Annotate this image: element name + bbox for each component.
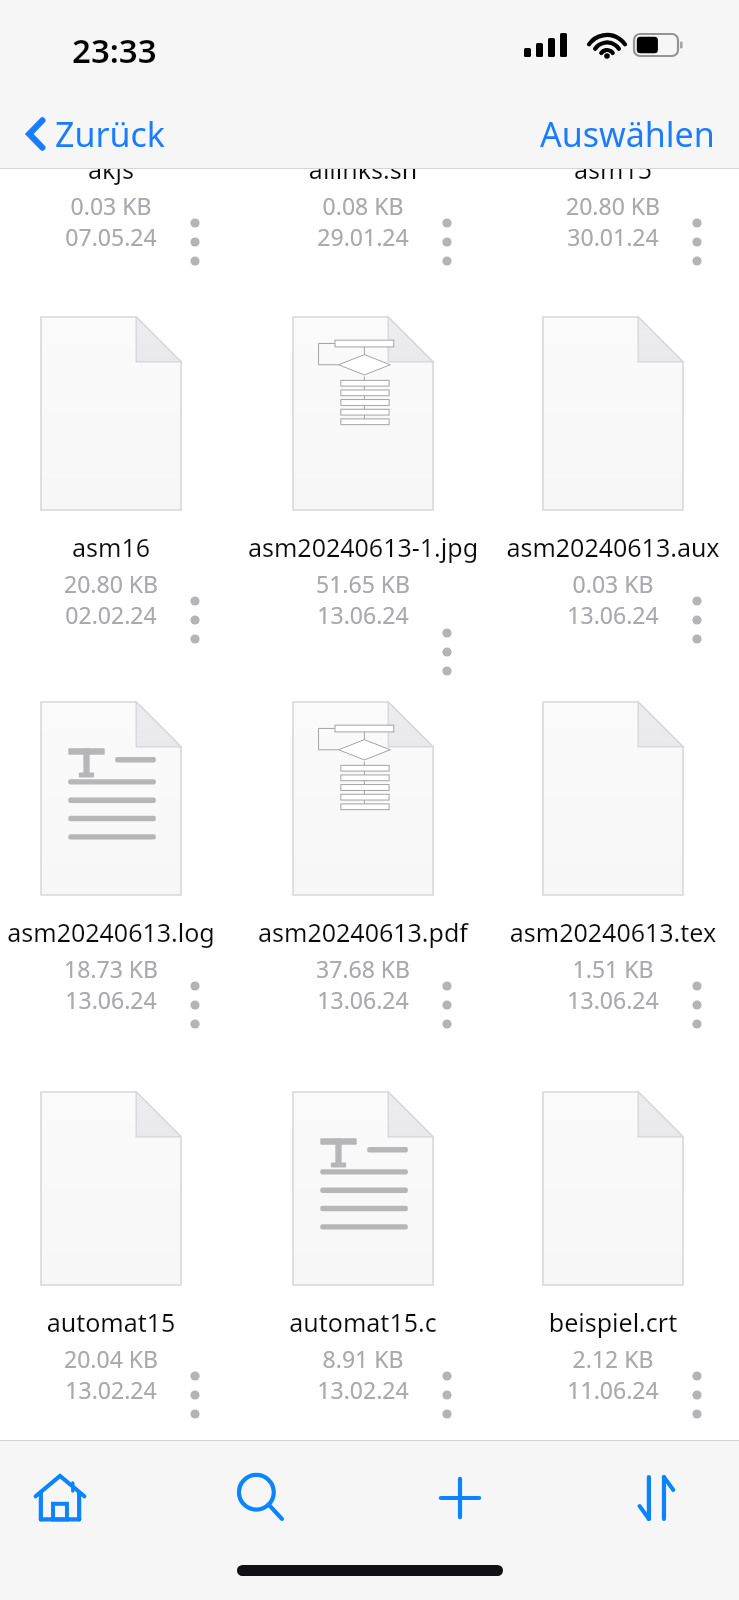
button[interactable]: Home xyxy=(14,1452,106,1544)
button[interactable] xyxy=(293,1092,433,1285)
button[interactable]: akjs xyxy=(0,152,236,252)
staticText: 13.02.24 xyxy=(238,1374,488,1405)
staticText: 13.06.24 xyxy=(0,984,236,1015)
staticText: 37.68 KB xyxy=(238,953,488,984)
staticText: 30.01.24 xyxy=(488,221,738,252)
staticText: 23:33 xyxy=(72,28,157,73)
button[interactable]: More options for asm20240613.log xyxy=(171,975,219,1035)
staticText: 13.06.24 xyxy=(238,599,488,630)
staticText: 20.04 KB xyxy=(0,1343,236,1374)
staticText: 51.65 KB xyxy=(238,568,488,599)
button[interactable]: More options for beispiel.crt xyxy=(673,1365,721,1425)
button[interactable]: More options for automat15 xyxy=(171,1365,219,1425)
staticText: asm20240613.aux xyxy=(488,530,738,564)
staticText: asm20240613.log xyxy=(0,915,236,949)
staticText: 13.06.24 xyxy=(488,984,738,1015)
staticText: akjs xyxy=(0,152,236,186)
staticText: 07.05.24 xyxy=(0,221,236,252)
button[interactable]: asm20240613.log xyxy=(0,915,236,1015)
staticText: asm20240613.tex xyxy=(488,915,738,949)
button[interactable]: Auswählen xyxy=(516,105,739,163)
button[interactable] xyxy=(293,317,433,510)
staticText: 20.80 KB xyxy=(488,190,738,221)
button[interactable]: More options for automat15.c xyxy=(423,1365,471,1425)
button[interactable]: More options for asm16 xyxy=(171,590,219,650)
button[interactable]: Search xyxy=(215,1452,307,1544)
button[interactable] xyxy=(41,0,181,109)
button[interactable]: asm20240613.pdf xyxy=(238,915,488,1015)
staticText: Auswählen xyxy=(540,111,715,157)
button[interactable] xyxy=(293,702,433,895)
staticText: 29.01.24 xyxy=(238,221,488,252)
button[interactable]: allinks.sh xyxy=(238,152,488,252)
staticText: 13.06.24 xyxy=(238,984,488,1015)
staticText: 0.08 KB xyxy=(238,190,488,221)
staticText: allinks.sh xyxy=(238,152,488,186)
button[interactable]: More options for asm15 xyxy=(673,212,721,272)
staticText: asm20240613.pdf xyxy=(238,915,488,949)
staticText: 18.73 KB xyxy=(0,953,236,984)
button[interactable] xyxy=(41,1092,181,1285)
staticText: automat15 xyxy=(0,1305,236,1339)
button[interactable] xyxy=(543,702,683,895)
staticText: 11.06.24 xyxy=(488,1374,738,1405)
button[interactable]: asm15 xyxy=(488,152,738,252)
staticText: 0.03 KB xyxy=(0,190,236,221)
staticText: automat15.c xyxy=(238,1305,488,1339)
staticText: asm15 xyxy=(488,152,738,186)
button[interactable]: New xyxy=(414,1452,506,1544)
button[interactable] xyxy=(41,317,181,510)
button[interactable]: More options for akjs xyxy=(171,212,219,272)
button[interactable]: Zurück xyxy=(0,107,179,161)
staticText: 1.51 KB xyxy=(488,953,738,984)
button[interactable]: beispiel.crt xyxy=(488,1305,738,1405)
button[interactable]: More options for asm20240613.tex xyxy=(673,975,721,1035)
button[interactable]: automat15.c xyxy=(238,1305,488,1405)
button[interactable]: More options for allinks.sh xyxy=(423,212,471,272)
button[interactable]: More options for asm20240613.aux xyxy=(673,590,721,650)
button[interactable] xyxy=(543,317,683,510)
button[interactable]: automat15 xyxy=(0,1305,236,1405)
staticText: asm20240613-1.jpg xyxy=(238,530,488,564)
staticText: asm16 xyxy=(0,530,236,564)
button[interactable] xyxy=(41,702,181,895)
button[interactable]: asm20240613.tex xyxy=(488,915,738,1015)
staticText: 2.12 KB xyxy=(488,1343,738,1374)
button[interactable]: asm16 xyxy=(0,530,236,630)
button[interactable]: More options for asm20240613-1.jpg xyxy=(423,622,471,682)
button[interactable]: More options for asm20240613.pdf xyxy=(423,975,471,1035)
staticText: 13.02.24 xyxy=(0,1374,236,1405)
staticText: 0.03 KB xyxy=(488,568,738,599)
button[interactable]: Sort xyxy=(611,1452,703,1544)
staticText: 20.80 KB xyxy=(0,568,236,599)
staticText: beispiel.crt xyxy=(488,1305,738,1339)
staticText: 8.91 KB xyxy=(238,1343,488,1374)
button[interactable]: asm20240613.aux xyxy=(488,530,738,630)
button[interactable] xyxy=(543,1092,683,1285)
staticText: 13.06.24 xyxy=(488,599,738,630)
button[interactable]: asm20240613-1.jpg xyxy=(238,530,488,630)
staticText: Zurück xyxy=(55,111,165,157)
button[interactable] xyxy=(543,0,683,109)
staticText: 02.02.24 xyxy=(0,599,236,630)
